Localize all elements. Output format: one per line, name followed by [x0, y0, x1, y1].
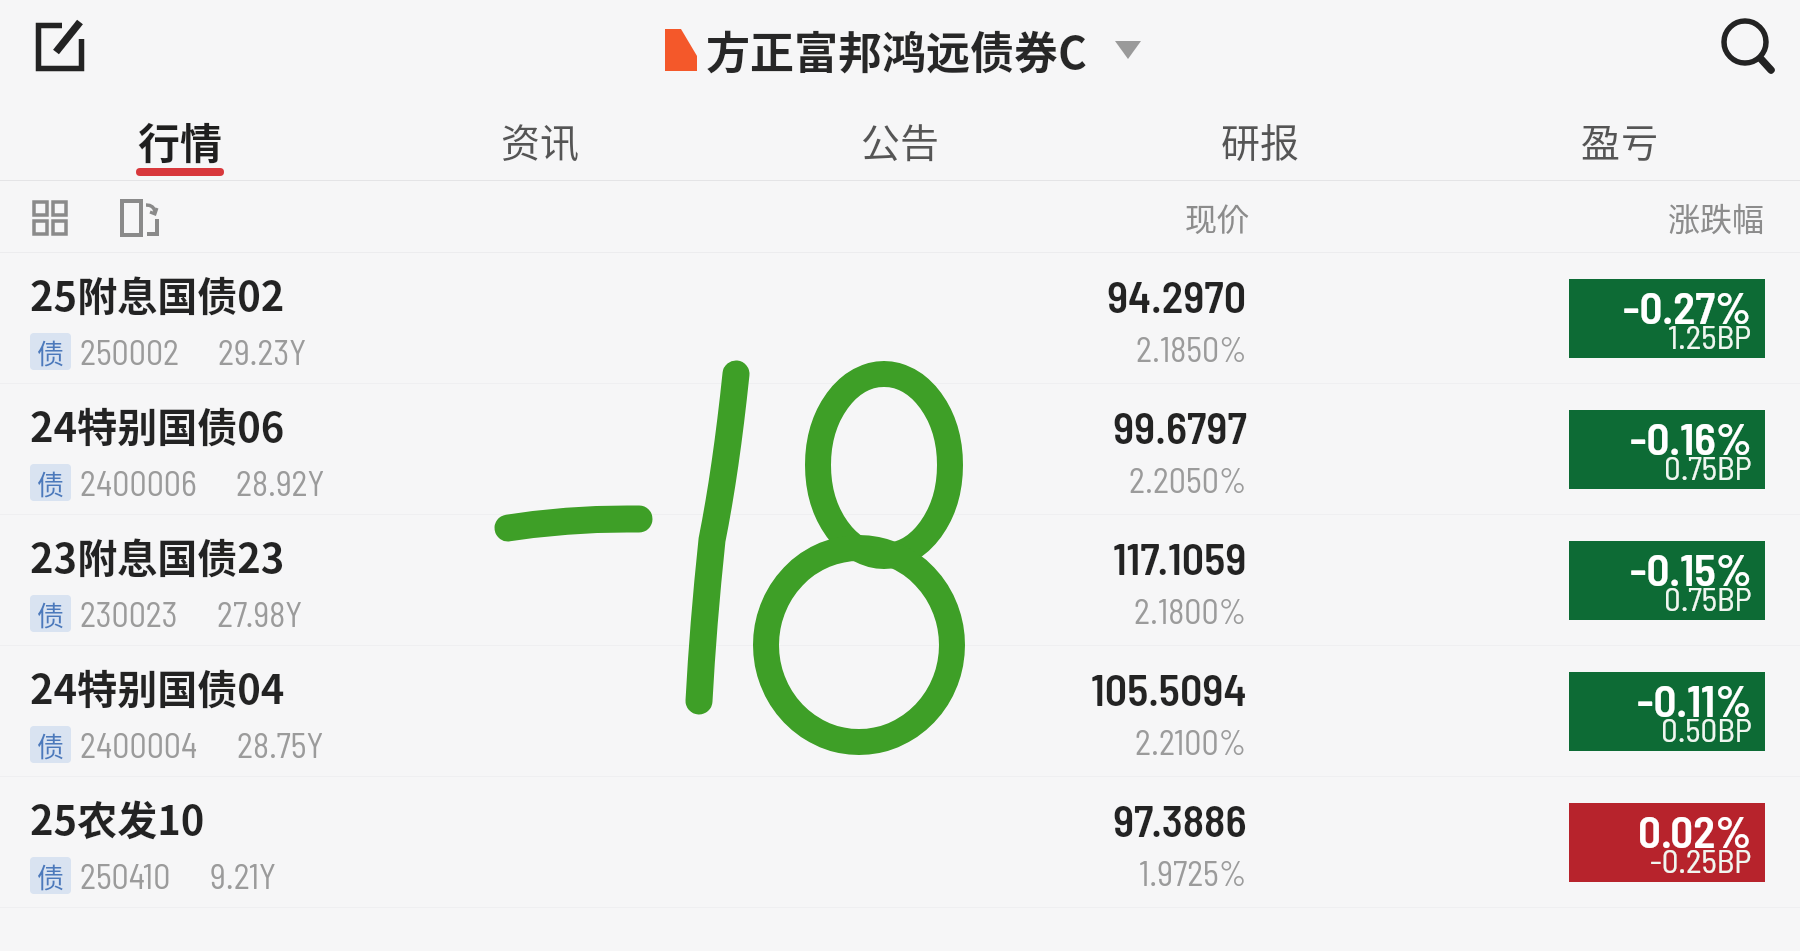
button[interactable]: 25附息国债02: [0, 253, 1800, 384]
staticText: 117.1059: [1113, 531, 1247, 584]
staticText: 0.50BP: [1661, 709, 1752, 749]
staticText: 债: [37, 464, 64, 501]
staticText: 250002: [80, 331, 179, 372]
staticText: 现价: [1185, 194, 1250, 240]
staticText: 24特别国债04: [30, 658, 285, 716]
staticText: 29.23Y: [218, 331, 306, 372]
staticText: -0.25BP: [1650, 840, 1752, 880]
button[interactable]: 0.02%: [1569, 803, 1765, 882]
staticText: 资讯: [501, 112, 580, 168]
staticText: 0.02%: [1638, 803, 1752, 857]
staticText: 1.25BP: [1668, 316, 1752, 356]
button[interactable]: 研报: [1080, 100, 1440, 180]
button[interactable]: -0.15%: [1569, 541, 1765, 620]
button[interactable]: [114, 193, 162, 241]
button[interactable]: 23附息国债23: [0, 515, 1800, 646]
staticText: 105.5094: [1091, 662, 1247, 715]
staticText: 24特别国债06: [30, 396, 285, 454]
staticText: 债: [37, 333, 64, 370]
button[interactable]: [26, 193, 74, 241]
staticText: 方正富邦鸿远债券C: [706, 18, 1087, 82]
button[interactable]: -0.11%: [1569, 672, 1765, 751]
button[interactable]: 方正富邦鸿远债券C: [663, 0, 1141, 100]
staticText: 99.6797: [1113, 400, 1247, 453]
staticText: 盈亏: [1581, 112, 1660, 168]
staticText: 涨跌幅: [1668, 194, 1765, 240]
staticText: 债: [37, 595, 64, 632]
staticText: 27.98Y: [217, 593, 303, 634]
staticText: 2.1850%: [1136, 328, 1247, 369]
staticText: 2400006: [80, 462, 197, 503]
staticText: 公告: [861, 112, 940, 168]
staticText: -0.11%: [1637, 672, 1752, 726]
button[interactable]: 行情: [0, 100, 360, 180]
staticText: 250410: [80, 855, 171, 896]
button[interactable]: 24特别国债04: [0, 646, 1800, 777]
button[interactable]: 公告: [720, 100, 1080, 180]
button[interactable]: [25, 15, 89, 79]
staticText: 230023: [80, 593, 178, 634]
staticText: 23附息国债23: [30, 527, 285, 585]
staticText: 2.1800%: [1134, 590, 1247, 631]
staticText: 行情: [138, 110, 223, 171]
button[interactable]: 24特别国债06: [0, 384, 1800, 515]
button[interactable]: [1718, 12, 1782, 76]
staticText: 2.2100%: [1135, 721, 1247, 762]
button[interactable]: 资讯: [360, 100, 720, 180]
button[interactable]: -0.27%: [1569, 279, 1765, 358]
staticText: 2400004: [80, 724, 198, 765]
staticText: 2.2050%: [1129, 459, 1247, 500]
staticText: 28.75Y: [237, 724, 324, 765]
staticText: 1.9725%: [1139, 852, 1247, 893]
staticText: 9.21Y: [210, 855, 276, 896]
staticText: -0.16%: [1630, 410, 1752, 464]
staticText: 25附息国债02: [30, 265, 285, 323]
staticText: -0.15%: [1630, 541, 1752, 595]
button[interactable]: 25农发10: [0, 777, 1800, 908]
staticText: 0.75BP: [1664, 447, 1752, 487]
staticText: 债: [37, 726, 64, 763]
staticText: 28.92Y: [236, 462, 325, 503]
button[interactable]: -0.16%: [1569, 410, 1765, 489]
staticText: 25农发10: [30, 789, 205, 847]
staticText: 0.75BP: [1664, 578, 1752, 618]
staticText: 94.2970: [1107, 269, 1247, 322]
staticText: 97.3886: [1113, 793, 1247, 846]
button[interactable]: 盈亏: [1440, 100, 1800, 180]
staticText: 研报: [1221, 112, 1300, 168]
staticText: -0.27%: [1623, 279, 1752, 333]
staticText: 债: [37, 857, 64, 894]
